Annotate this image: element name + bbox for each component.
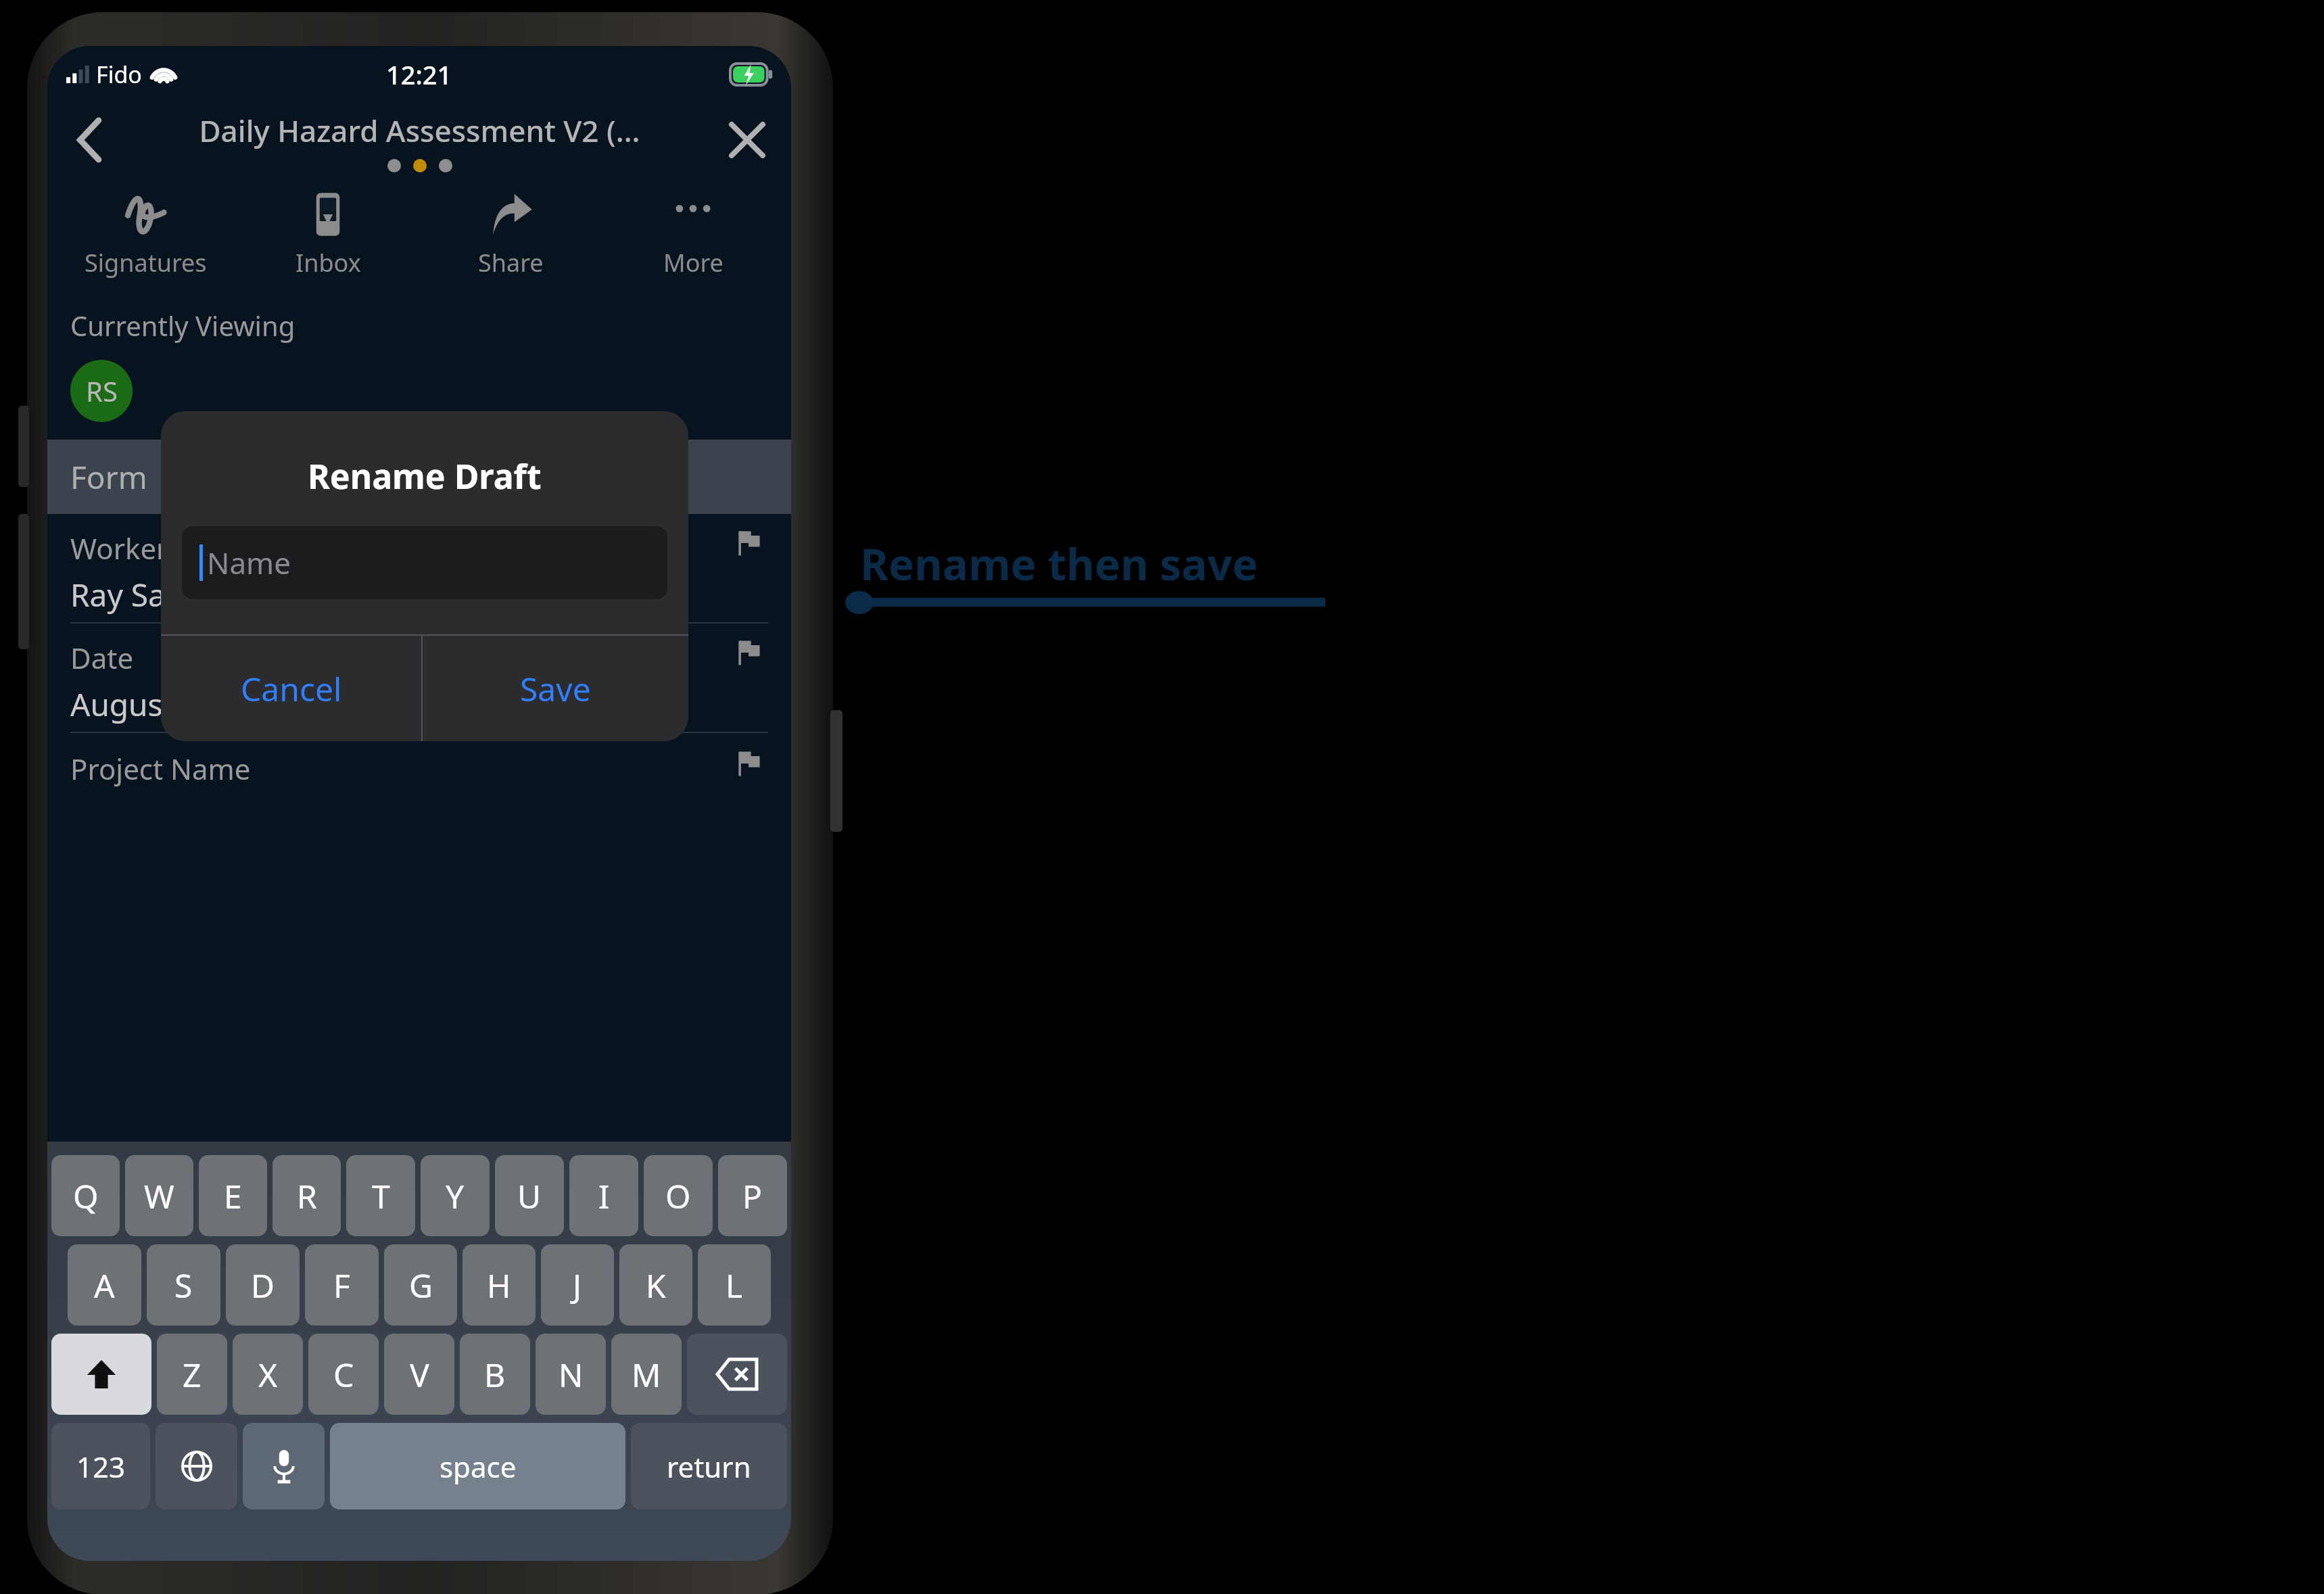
staticText: D — [251, 1263, 275, 1307]
button[interactable]: Inbox — [237, 177, 419, 292]
staticText: B — [484, 1353, 506, 1397]
button[interactable]: Save — [423, 636, 688, 741]
staticText: Q — [73, 1174, 99, 1218]
button[interactable]: Close — [717, 110, 778, 170]
button[interactable]: Share — [419, 177, 602, 292]
button[interactable]: K — [619, 1244, 692, 1326]
button[interactable]: P — [718, 1155, 787, 1236]
button[interactable]: Shift — [51, 1334, 151, 1415]
button[interactable]: space — [330, 1423, 625, 1509]
button[interactable]: J — [541, 1244, 614, 1326]
button[interactable]: C — [308, 1334, 379, 1415]
staticText: return — [667, 1447, 751, 1486]
button[interactable]: G — [384, 1244, 457, 1326]
staticText: More — [663, 246, 724, 279]
staticText: Rename then save — [860, 534, 1258, 593]
staticText: Name — [207, 542, 291, 583]
staticText: V — [410, 1353, 429, 1397]
staticText: L — [726, 1263, 743, 1307]
staticText: Y — [446, 1174, 465, 1218]
staticText: 123 — [76, 1447, 126, 1486]
button[interactable]: A — [68, 1244, 141, 1326]
staticText: R — [297, 1174, 317, 1218]
button[interactable]: Name — [182, 526, 667, 599]
button[interactable]: More — [602, 177, 784, 292]
staticText: Inbox — [295, 246, 361, 279]
staticText: August 4, 2021 — [70, 683, 287, 726]
button[interactable]: L — [698, 1244, 771, 1326]
staticText: X — [258, 1353, 278, 1397]
staticText: Rename Draft — [308, 453, 542, 499]
staticText: RS — [86, 373, 118, 409]
button[interactable]: X — [233, 1334, 303, 1415]
button[interactable]: Cancel — [161, 636, 421, 741]
button[interactable]: D — [226, 1244, 300, 1326]
staticText: K — [646, 1263, 666, 1307]
staticText: Fido — [96, 59, 142, 90]
button[interactable]: Backspace — [687, 1334, 787, 1415]
staticText: C — [333, 1353, 354, 1397]
staticText: J — [573, 1263, 582, 1307]
staticText: W — [144, 1174, 174, 1218]
staticText: Daily Hazard Assessment V2 (... — [199, 110, 640, 151]
button[interactable]: W — [125, 1155, 193, 1236]
button[interactable]: I — [569, 1155, 638, 1236]
staticText: G — [409, 1263, 433, 1307]
staticText: Cancel — [241, 667, 342, 711]
staticText: U — [517, 1174, 542, 1218]
button[interactable]: Back — [60, 110, 120, 170]
staticText: S — [174, 1263, 193, 1307]
staticText: Signatures — [85, 246, 207, 279]
staticText: T — [372, 1174, 390, 1218]
staticText: Currently Viewing — [70, 307, 295, 344]
button[interactable]: S — [147, 1244, 220, 1326]
staticText: I — [598, 1174, 610, 1218]
staticText: Form — [70, 456, 147, 498]
button[interactable]: U — [495, 1155, 564, 1236]
staticText: N — [559, 1353, 584, 1397]
button[interactable]: M — [611, 1334, 682, 1415]
button[interactable]: O — [644, 1155, 713, 1236]
button[interactable]: return — [631, 1423, 787, 1509]
staticText: Save — [520, 667, 591, 711]
staticText: Worker — [70, 529, 168, 567]
staticText: Ray Salazar — [70, 573, 236, 616]
button[interactable]: H — [463, 1244, 536, 1326]
staticText: space — [440, 1447, 517, 1486]
staticText: E — [224, 1174, 242, 1218]
button[interactable]: N — [536, 1334, 606, 1415]
button[interactable]: 123 — [51, 1423, 150, 1509]
button[interactable]: Change keyboard — [156, 1423, 237, 1509]
button[interactable]: T — [346, 1155, 415, 1236]
button[interactable]: F — [305, 1244, 379, 1326]
button[interactable]: B — [460, 1334, 530, 1415]
staticText: A — [94, 1263, 115, 1307]
button[interactable]: Y — [421, 1155, 490, 1236]
staticText: Project Name — [70, 749, 251, 788]
staticText: Date — [70, 638, 134, 677]
button[interactable]: Z — [157, 1334, 227, 1415]
staticText: F — [333, 1263, 350, 1307]
button[interactable]: Q — [51, 1155, 120, 1236]
button[interactable]: Dictate — [243, 1423, 325, 1509]
button[interactable]: V — [384, 1334, 454, 1415]
staticText: 12:21 — [386, 57, 452, 92]
button[interactable]: R — [272, 1155, 341, 1236]
button[interactable]: E — [199, 1155, 267, 1236]
staticText: M — [632, 1353, 661, 1397]
staticText: Share — [478, 246, 544, 279]
button[interactable]: Signatures — [54, 177, 237, 292]
staticText: P — [742, 1174, 763, 1218]
staticText: H — [487, 1263, 511, 1307]
staticText: Z — [183, 1353, 201, 1397]
staticText: O — [665, 1174, 691, 1218]
